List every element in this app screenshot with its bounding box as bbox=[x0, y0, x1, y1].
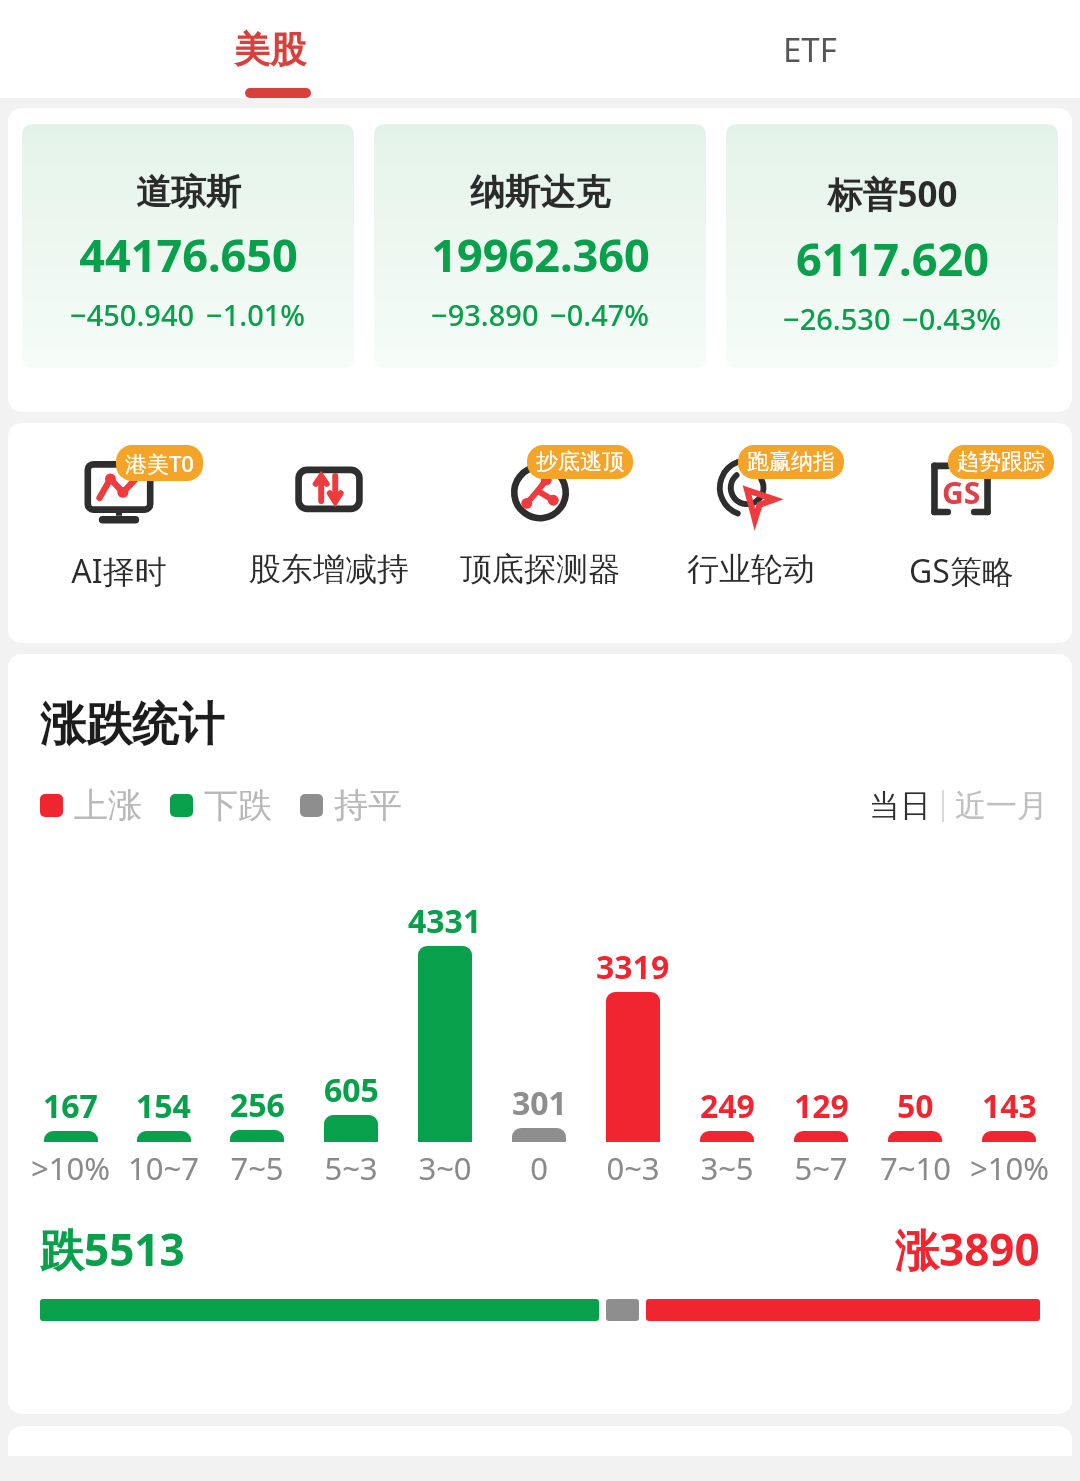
staticText: 0 bbox=[530, 1147, 548, 1189]
staticText: −0.47% bbox=[550, 295, 650, 334]
other: 股东增减持 bbox=[290, 455, 368, 533]
staticText: 美股 bbox=[234, 27, 306, 72]
staticText: ETF bbox=[783, 27, 837, 72]
staticText: 涨3890 bbox=[895, 1219, 1040, 1279]
button[interactable]: 下跌 bbox=[170, 784, 272, 827]
other: AI择时 bbox=[80, 455, 158, 533]
staticText: 154 bbox=[136, 1084, 191, 1128]
staticText: −0.43% bbox=[902, 299, 1002, 338]
staticText: 4331 bbox=[408, 899, 482, 943]
staticText: 50 bbox=[897, 1084, 934, 1128]
staticText: 跌5513 bbox=[40, 1219, 185, 1279]
staticText: 持平 bbox=[334, 784, 402, 827]
staticText: 10~7 bbox=[128, 1147, 199, 1189]
staticText: 上涨 bbox=[74, 784, 142, 827]
staticText: 顶底探测器 bbox=[460, 549, 620, 589]
button[interactable]: 近一月 bbox=[955, 786, 1048, 825]
staticText: 301 bbox=[512, 1081, 567, 1125]
staticText: 5~7 bbox=[794, 1147, 848, 1189]
staticText: 行业轮动 bbox=[687, 549, 815, 589]
other: 行业轮动 bbox=[712, 455, 790, 533]
staticText: >10% bbox=[970, 1147, 1049, 1189]
staticText: 0~3 bbox=[606, 1147, 660, 1189]
staticText: 趋势跟踪 bbox=[957, 448, 1045, 476]
staticText: 抄底逃顶 bbox=[536, 448, 624, 476]
staticText: 605 bbox=[324, 1068, 379, 1112]
staticText: 道琼斯 bbox=[136, 170, 241, 214]
staticText: 纳斯达克 bbox=[470, 170, 610, 214]
other: 顶底探测器 bbox=[501, 455, 579, 533]
staticText: 129 bbox=[794, 1084, 849, 1128]
staticText: 近一月 bbox=[955, 786, 1048, 825]
staticText: 256 bbox=[230, 1083, 285, 1127]
staticText: 跑赢纳指 bbox=[747, 448, 835, 476]
staticText: 下跌 bbox=[204, 784, 272, 827]
staticText: 19962.360 bbox=[431, 224, 650, 285]
staticText: 6117.620 bbox=[796, 228, 989, 289]
other: GS策略 bbox=[922, 455, 1000, 533]
button[interactable]: 纳斯达克 bbox=[374, 124, 706, 368]
button[interactable]: 上涨 bbox=[40, 784, 142, 827]
button[interactable]: 股东增减持 bbox=[229, 447, 429, 589]
staticText: 当日 bbox=[869, 786, 931, 825]
staticText: 股东增减持 bbox=[249, 549, 409, 589]
staticText: 44176.650 bbox=[79, 224, 298, 285]
staticText: 港美T0 bbox=[125, 448, 194, 478]
staticText: 5~3 bbox=[324, 1147, 378, 1189]
button[interactable]: GS策略 bbox=[861, 447, 1061, 593]
staticText: 167 bbox=[43, 1084, 98, 1128]
staticText: GS策略 bbox=[909, 549, 1014, 593]
staticText: >10% bbox=[31, 1147, 110, 1189]
button[interactable]: 行业轮动 bbox=[651, 447, 851, 589]
staticText: 249 bbox=[700, 1084, 755, 1128]
staticText: −93.890 bbox=[431, 295, 539, 334]
button[interactable]: 顶底探测器 bbox=[440, 447, 640, 589]
staticText: 143 bbox=[982, 1084, 1037, 1128]
staticText: 3319 bbox=[596, 945, 670, 989]
staticText: −1.01% bbox=[206, 295, 306, 334]
staticText: 标普500 bbox=[827, 170, 958, 218]
staticText: −450.940 bbox=[70, 295, 195, 334]
button[interactable]: 道琼斯 bbox=[22, 124, 354, 368]
staticText: 涨跌统计 bbox=[40, 696, 224, 754]
button[interactable]: ETF bbox=[540, 0, 1080, 98]
button[interactable]: AI择时 bbox=[19, 447, 219, 593]
button[interactable]: 美股 bbox=[0, 0, 540, 98]
staticText: 3~0 bbox=[418, 1147, 472, 1189]
button[interactable]: 标普500 bbox=[726, 124, 1058, 368]
staticText: 7~5 bbox=[230, 1147, 284, 1189]
staticText: −26.530 bbox=[783, 299, 891, 338]
staticText: AI择时 bbox=[71, 549, 167, 593]
button[interactable]: 持平 bbox=[300, 784, 402, 827]
button[interactable]: 当日 bbox=[869, 786, 931, 825]
staticText: 3~5 bbox=[700, 1147, 754, 1189]
staticText: 7~10 bbox=[880, 1147, 951, 1189]
staticText: GS bbox=[942, 472, 981, 513]
